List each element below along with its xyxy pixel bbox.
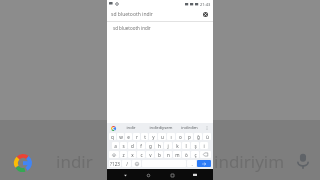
button[interactable]: ö (182, 151, 190, 158)
button[interactable]: Backspace (200, 151, 211, 158)
staticText: n (167, 152, 170, 158)
button[interactable]: Emoji (132, 160, 141, 167)
button[interactable]: r (133, 133, 140, 140)
staticText: i (203, 143, 205, 149)
button[interactable]: ?123 (109, 160, 121, 167)
staticText: r (136, 134, 138, 140)
button[interactable]: sd bluetooth indir (107, 8, 213, 21)
button[interactable]: y (149, 133, 157, 140)
staticText: indirdiysem (149, 125, 173, 131)
staticText: h (158, 143, 161, 149)
button[interactable]: Search (197, 160, 211, 167)
button[interactable]: indir (56, 150, 93, 173)
button[interactable]: indirdiysem (146, 123, 175, 132)
button[interactable]: w (117, 133, 124, 140)
button[interactable]: f (137, 142, 145, 149)
staticText: c (140, 152, 143, 158)
button[interactable]: Shift (109, 151, 119, 158)
button[interactable]: Clear query (202, 11, 209, 18)
staticText: b (158, 152, 161, 158)
staticText: x (131, 152, 134, 158)
button[interactable]: Google (12, 152, 34, 174)
button[interactable]: p (185, 133, 193, 140)
staticText: f (140, 143, 142, 149)
staticText: . (191, 161, 193, 167)
staticText: u (161, 134, 164, 140)
button[interactable]: Voice search (292, 150, 314, 172)
button[interactable]: g (146, 142, 154, 149)
staticText: ş (194, 143, 197, 149)
staticText: indirdim (181, 125, 198, 131)
button[interactable]: i (200, 142, 208, 149)
staticText: 21:43 (200, 2, 211, 7)
button[interactable]: Hide keyboard (190, 170, 200, 180)
staticText: sd bluetooth indir (111, 11, 202, 18)
staticText: g (149, 143, 152, 149)
staticText: t (144, 134, 146, 140)
button[interactable]: z (120, 151, 127, 158)
button[interactable]: / (122, 160, 131, 167)
staticText: ö (185, 152, 188, 158)
staticText: q (111, 134, 114, 140)
button[interactable]: indir (116, 123, 146, 132)
staticText: ğ (197, 134, 200, 140)
staticText: o (179, 134, 182, 140)
button[interactable]: ü (203, 133, 211, 140)
staticText: s (122, 143, 125, 149)
staticText: ı (170, 134, 172, 140)
staticText: y (152, 134, 155, 140)
button[interactable]: j (164, 142, 172, 149)
button[interactable]: m (173, 151, 181, 158)
button[interactable]: Home (143, 170, 153, 180)
button[interactable]: q (109, 133, 116, 140)
button[interactable]: k (173, 142, 181, 149)
staticText: v (149, 152, 152, 158)
button[interactable]: ç (191, 151, 199, 158)
staticText: k (176, 143, 179, 149)
button[interactable]: v (146, 151, 154, 158)
staticText: / (126, 161, 128, 167)
button[interactable]: a (112, 142, 119, 149)
button[interactable]: ğ (194, 133, 202, 140)
button[interactable]: u (158, 133, 166, 140)
button[interactable]: b (155, 151, 163, 158)
button[interactable]: Recent apps (167, 170, 177, 180)
button[interactable]: l (182, 142, 190, 149)
button[interactable]: indirdim (175, 123, 204, 132)
staticText: w (119, 134, 123, 140)
staticText: e (127, 134, 130, 140)
button[interactable]: sd bluetooth indir (107, 22, 213, 34)
staticText: ?123 (110, 161, 120, 167)
staticText: j (167, 143, 169, 149)
staticText: m (175, 152, 180, 158)
button[interactable]: indiriyim (214, 150, 285, 173)
staticText: p (188, 134, 191, 140)
button[interactable]: ı (167, 133, 175, 140)
button[interactable]: More options (204, 125, 210, 131)
button[interactable]: d (128, 142, 136, 149)
staticText: indir (126, 125, 136, 131)
button[interactable]: Google (110, 125, 116, 131)
staticText: ü (206, 134, 209, 140)
staticText: a (114, 143, 117, 149)
button[interactable]: e (125, 133, 132, 140)
staticText: indiriyim (214, 150, 285, 173)
button[interactable]: o (176, 133, 184, 140)
staticText: indir (56, 150, 93, 173)
staticText: sd bluetooth indir (113, 25, 151, 31)
staticText: d (131, 143, 134, 149)
staticText: l (185, 143, 187, 149)
button[interactable]: x (128, 151, 136, 158)
button[interactable]: h (155, 142, 163, 149)
button[interactable]: c (137, 151, 145, 158)
button[interactable]: . (187, 160, 196, 167)
button[interactable]: s (120, 142, 127, 149)
button[interactable]: ş (191, 142, 199, 149)
staticText: ç (194, 152, 197, 158)
button[interactable]: n (164, 151, 172, 158)
button[interactable]: t (141, 133, 148, 140)
button[interactable]: Back (120, 170, 130, 180)
staticText: z (122, 152, 125, 158)
